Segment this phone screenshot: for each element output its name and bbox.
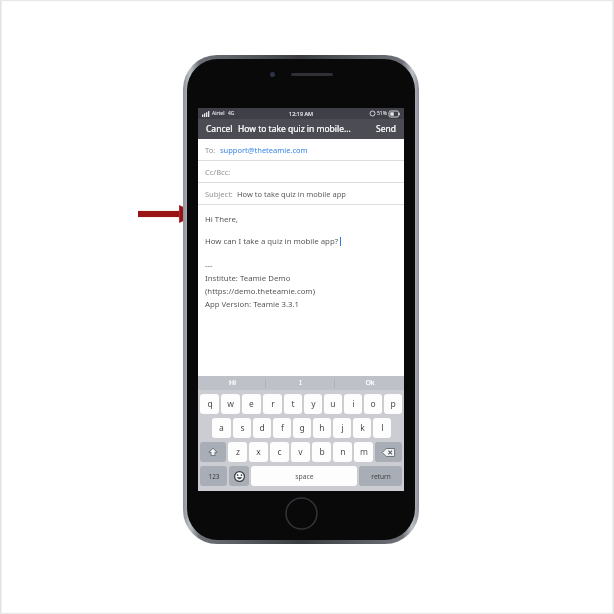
staticText: 51% xyxy=(377,110,387,117)
button[interactable]: e xyxy=(242,394,261,414)
button[interactable]: Subject: xyxy=(198,183,404,204)
button[interactable]: i xyxy=(344,394,362,414)
staticText: How to take quiz in mobile app xyxy=(237,189,346,199)
staticText: Institute: Teamie Demo xyxy=(205,273,291,284)
button[interactable]: h xyxy=(313,418,331,438)
staticText: 12:19 AM xyxy=(289,110,313,117)
staticText: i xyxy=(352,398,355,410)
button[interactable]: k xyxy=(353,418,371,438)
button[interactable]: Send xyxy=(373,120,399,138)
staticText: d xyxy=(259,422,265,434)
button[interactable]: m xyxy=(354,442,373,462)
staticText: q xyxy=(207,398,213,410)
staticText: To: xyxy=(205,145,216,155)
staticText: c xyxy=(277,446,282,458)
button[interactable]: u xyxy=(324,394,342,414)
staticText: Send xyxy=(376,123,396,135)
staticText: b xyxy=(319,446,325,458)
button[interactable]: Cc/Bcc: xyxy=(198,161,404,182)
button[interactable]: n xyxy=(333,442,352,462)
staticText: o xyxy=(370,398,376,410)
staticText: Subject: xyxy=(205,189,233,199)
staticText: p xyxy=(390,398,396,410)
staticText: I xyxy=(299,378,302,388)
button[interactable]: 123 xyxy=(200,466,227,486)
staticText: x xyxy=(256,446,261,458)
button[interactable]: Hi There, xyxy=(198,205,404,310)
staticText: w xyxy=(227,398,234,410)
button[interactable]: Home xyxy=(285,497,318,530)
button[interactable]: j xyxy=(333,418,351,438)
button[interactable]: w xyxy=(221,394,240,414)
staticText: 4G xyxy=(228,110,235,117)
button[interactable]: Shift xyxy=(200,442,226,462)
button[interactable]: return xyxy=(359,466,402,486)
staticText: f xyxy=(281,422,284,434)
button[interactable]: q xyxy=(200,394,219,414)
staticText: Cancel xyxy=(206,123,233,135)
staticText: t xyxy=(291,398,295,410)
button[interactable]: l xyxy=(373,418,391,438)
staticText: How to take quiz in mobile... xyxy=(238,123,371,135)
button[interactable]: v xyxy=(291,442,310,462)
staticText: support@theteamie.com xyxy=(220,145,308,155)
staticText: space xyxy=(295,472,314,481)
button[interactable]: o xyxy=(364,394,382,414)
staticText: y xyxy=(311,398,316,410)
staticText: z xyxy=(236,446,240,458)
button[interactable]: p xyxy=(384,394,402,414)
button[interactable]: To: xyxy=(198,139,404,160)
button[interactable]: c xyxy=(270,442,289,462)
staticText: l xyxy=(381,422,384,434)
staticText: Hi There, xyxy=(205,214,238,225)
staticText: n xyxy=(340,446,346,458)
button[interactable]: f xyxy=(273,418,291,438)
button[interactable]: y xyxy=(304,394,322,414)
button[interactable]: a xyxy=(212,418,231,438)
button[interactable]: x xyxy=(249,442,268,462)
button[interactable]: Backspace xyxy=(375,442,402,462)
button[interactable]: Emoji xyxy=(229,466,249,486)
button[interactable]: Cancel xyxy=(203,120,236,138)
button[interactable]: g xyxy=(293,418,311,438)
staticText: s xyxy=(240,422,245,434)
button[interactable]: d xyxy=(253,418,271,438)
button[interactable]: t xyxy=(284,394,302,414)
staticText: (https://demo.theteamie.com) xyxy=(205,286,315,297)
staticText: Airtel xyxy=(212,110,225,117)
staticText: Cc/Bcc: xyxy=(205,167,231,177)
staticText: App Version: Teamie 3.3.1 xyxy=(205,299,299,310)
staticText: Ok xyxy=(365,378,375,388)
staticText: k xyxy=(360,422,365,434)
staticText: e xyxy=(249,398,254,410)
staticText: How can I take a quiz in mobile app? xyxy=(205,236,339,247)
button[interactable]: space xyxy=(251,466,357,486)
button[interactable]: s xyxy=(233,418,251,438)
button[interactable]: I xyxy=(266,376,335,390)
button[interactable]: r xyxy=(263,394,282,414)
staticText: m xyxy=(360,446,368,458)
staticText: Hi xyxy=(229,378,236,388)
staticText: j xyxy=(341,422,344,434)
button[interactable]: z xyxy=(228,442,247,462)
staticText: r xyxy=(271,398,275,410)
staticText: return xyxy=(371,472,391,481)
button[interactable]: Ok xyxy=(335,376,404,390)
staticText: v xyxy=(298,446,303,458)
staticText: u xyxy=(330,398,336,410)
staticText: 123 xyxy=(208,472,220,481)
staticText: h xyxy=(319,422,325,434)
staticText: g xyxy=(299,422,305,434)
button[interactable]: b xyxy=(312,442,331,462)
staticText: --- xyxy=(205,260,213,271)
button[interactable]: Hi xyxy=(198,376,266,390)
staticText: a xyxy=(219,422,224,434)
